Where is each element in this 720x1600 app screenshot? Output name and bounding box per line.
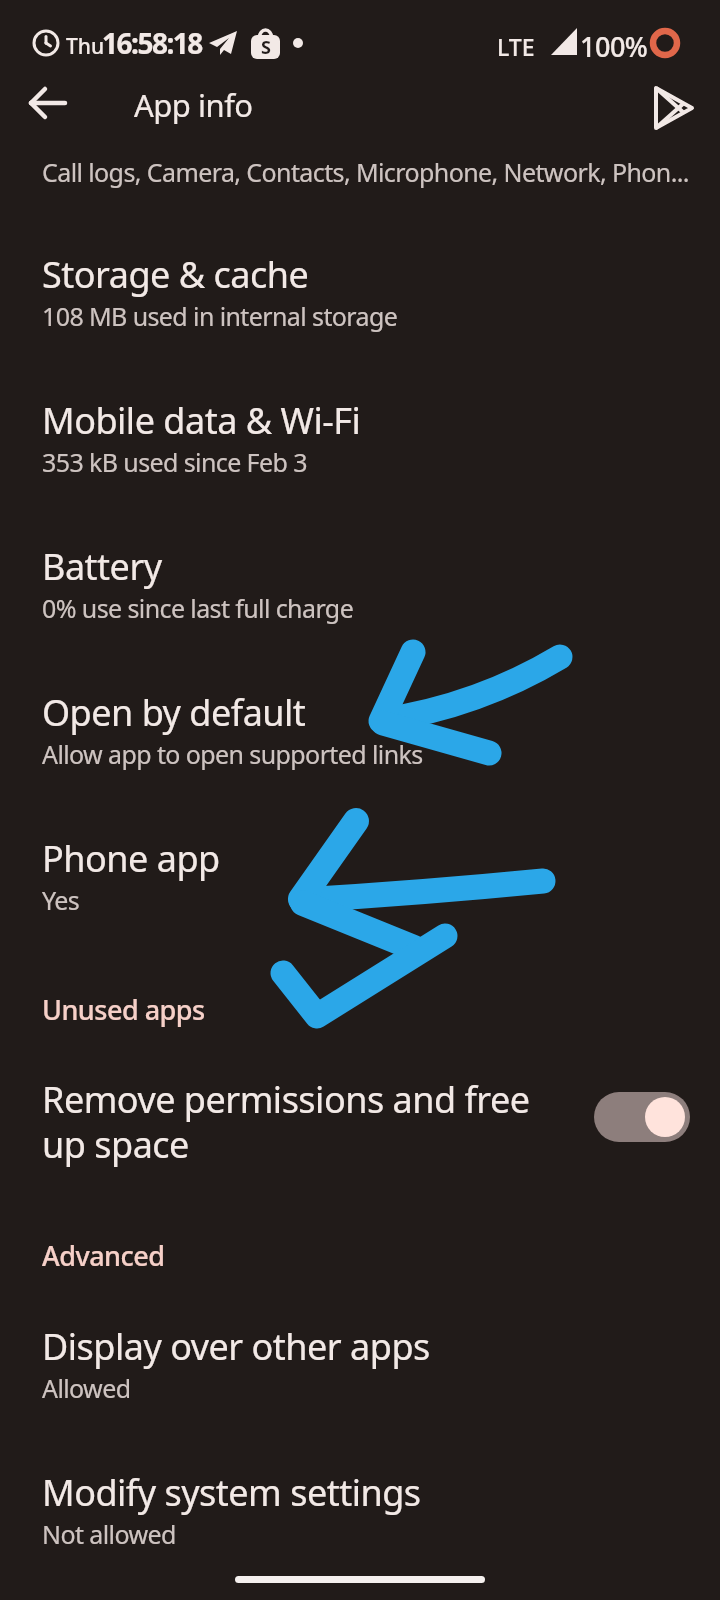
staticText: Mobile data & Wi-Fi xyxy=(42,396,361,445)
staticText: Not allowed xyxy=(42,1517,176,1551)
staticText: Allowed xyxy=(42,1371,131,1405)
staticText: Remove permissions and free up space xyxy=(42,1075,582,1169)
button[interactable]: Display over other apps xyxy=(0,1300,720,1420)
staticText: 108 MB used in internal storage xyxy=(42,299,398,333)
staticText: LTE xyxy=(497,31,535,62)
staticText: Phone app xyxy=(42,834,220,883)
button[interactable]: Open by default xyxy=(0,666,720,786)
staticText: Allow app to open supported links xyxy=(42,737,423,771)
staticText: 0% use since last full charge xyxy=(42,591,354,625)
button[interactable]: Remove permissions and free up space xyxy=(0,1060,720,1190)
staticText: 16:58:18 xyxy=(102,24,202,62)
button[interactable]: Storage & cache xyxy=(0,228,720,348)
staticText: Advanced xyxy=(42,1237,165,1274)
button[interactable] xyxy=(640,77,702,139)
staticText: S xyxy=(261,35,271,60)
staticText: Modify system settings xyxy=(42,1468,421,1517)
staticText: Storage & cache xyxy=(42,250,309,299)
staticText: Yes xyxy=(42,883,80,917)
staticText: Battery xyxy=(42,542,162,591)
staticText: 100% xyxy=(580,28,648,65)
button[interactable]: Mobile data & Wi-Fi xyxy=(0,374,720,494)
button[interactable]: Modify system settings xyxy=(0,1446,720,1566)
staticText: App info xyxy=(134,84,253,126)
button[interactable]: Phone app xyxy=(0,812,720,932)
button[interactable] xyxy=(594,1092,690,1142)
staticText: Unused apps xyxy=(42,991,205,1028)
button[interactable]: Battery xyxy=(0,520,720,640)
staticText: Open by default xyxy=(42,688,306,737)
staticText: Display over other apps xyxy=(42,1322,430,1371)
button[interactable] xyxy=(20,79,76,135)
staticText: 353 kB used since Feb 3 xyxy=(42,445,307,479)
staticText: Thu xyxy=(66,32,105,61)
staticText: Call logs, Camera, Contacts, Microphone,… xyxy=(42,155,689,189)
